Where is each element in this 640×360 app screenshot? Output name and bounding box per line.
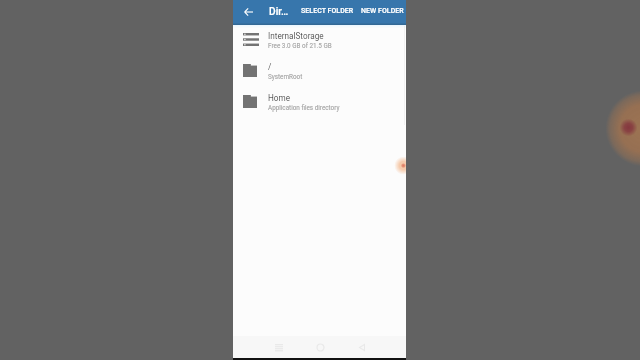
button[interactable]: Home: [233, 85, 406, 116]
staticText: Home: [268, 93, 291, 103]
staticText: Dir…: [269, 6, 289, 18]
button[interactable]: Back: [238, 0, 259, 23]
staticText: NEW FOLDER: [361, 7, 404, 15]
staticText: SystemRoot: [268, 73, 303, 80]
staticText: Application files directory: [268, 104, 340, 111]
button[interactable]: SELECT FOLDER: [299, 5, 356, 17]
staticText: SELECT FOLDER: [301, 7, 354, 15]
button[interactable]: Recent apps: [265, 336, 293, 358]
staticText: InternalStorage: [268, 31, 324, 41]
staticText: Free 3.0 GB of 21.5 GB: [268, 42, 332, 49]
button[interactable]: /: [233, 54, 406, 85]
button[interactable]: NEW FOLDER: [359, 5, 406, 17]
staticText: /: [268, 62, 272, 72]
button[interactable]: InternalStorage: [233, 23, 406, 54]
